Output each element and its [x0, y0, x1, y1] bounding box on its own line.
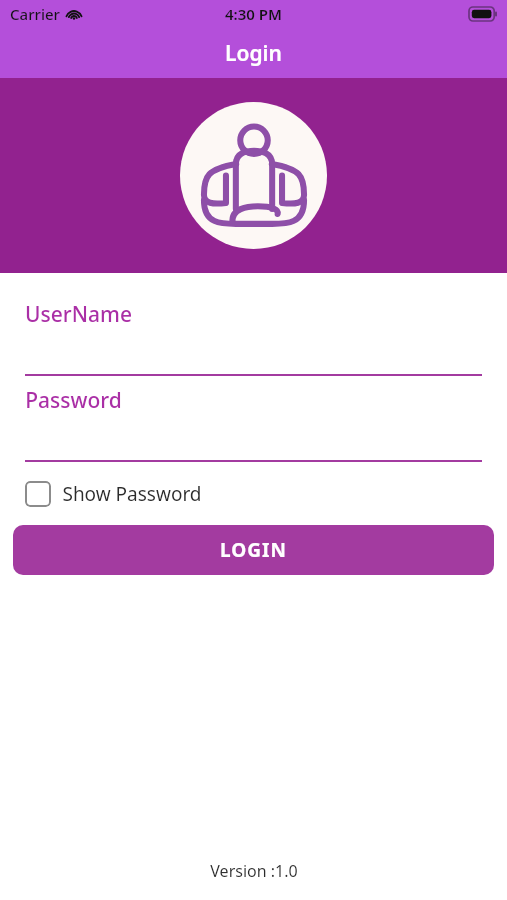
- button[interactable]: UserName: [0, 300, 507, 376]
- staticText: Version :1.0: [210, 860, 298, 882]
- button[interactable]: Password: [0, 386, 507, 462]
- button[interactable]: Show Password: [0, 479, 218, 509]
- staticText: Password: [25, 386, 122, 415]
- button[interactable]: LOGIN: [13, 525, 494, 575]
- staticText: Login: [225, 39, 282, 68]
- staticText: Show Password: [62, 481, 202, 507]
- staticText: Carrier: [10, 4, 60, 24]
- staticText: UserName: [25, 300, 132, 329]
- staticText: 4:30 PM: [225, 4, 282, 24]
- staticText: LOGIN: [220, 537, 287, 563]
